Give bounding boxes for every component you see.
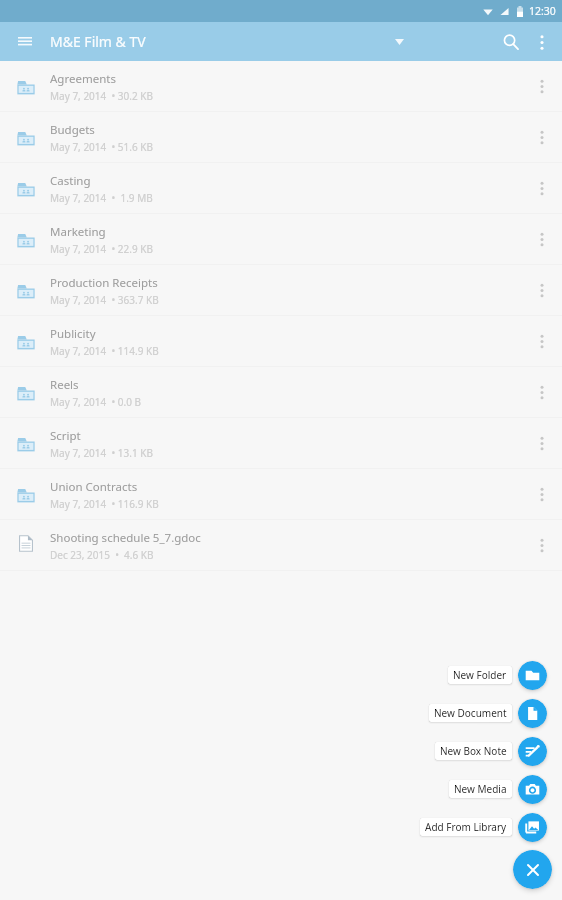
staticText: May 7, 2014 • 22.9 KB bbox=[50, 242, 153, 256]
button[interactable]: Close menu bbox=[513, 850, 552, 889]
staticText: M&E Film & TV bbox=[50, 32, 146, 51]
button[interactable]: New Media bbox=[449, 780, 512, 798]
button[interactable]: Item options bbox=[522, 423, 562, 463]
button[interactable]: New Box Note bbox=[435, 742, 512, 760]
staticText: Script bbox=[50, 428, 81, 444]
button[interactable]: Item options bbox=[522, 372, 562, 412]
button[interactable]: Item options bbox=[522, 525, 562, 565]
button[interactable]: Production Receipts bbox=[0, 265, 562, 315]
staticText: Casting bbox=[50, 173, 91, 189]
button[interactable]: Add From Library bbox=[420, 818, 512, 836]
button[interactable]: More options bbox=[526, 26, 558, 58]
staticText: New Box Note bbox=[440, 744, 507, 758]
staticText: New Media bbox=[454, 782, 507, 796]
staticText: Add From Library bbox=[425, 820, 507, 834]
staticText: May 7, 2014 • 1.9 MB bbox=[50, 191, 153, 205]
staticText: Agreements bbox=[50, 71, 116, 87]
staticText: May 7, 2014 • 114.9 KB bbox=[50, 344, 159, 358]
staticText: May 7, 2014 • 0.0 B bbox=[50, 395, 142, 409]
button[interactable]: Marketing bbox=[0, 214, 562, 264]
staticText: Marketing bbox=[50, 224, 106, 240]
button[interactable]: New Document bbox=[429, 704, 512, 722]
button[interactable]: Publicity bbox=[0, 316, 562, 366]
staticText: Budgets bbox=[50, 122, 95, 138]
button[interactable]: Shooting schedule 5_7.gdoc bbox=[0, 520, 562, 570]
button[interactable]: Add From Library bbox=[518, 813, 547, 842]
staticText: May 7, 2014 • 51.6 KB bbox=[50, 140, 153, 154]
button[interactable]: Reels bbox=[0, 367, 562, 417]
staticText: New Document bbox=[434, 706, 507, 720]
button[interactable]: Search bbox=[493, 24, 529, 60]
staticText: May 7, 2014 • 116.9 KB bbox=[50, 497, 159, 511]
button[interactable]: Item options bbox=[522, 219, 562, 259]
staticText: 12:30 bbox=[529, 4, 556, 18]
staticText: May 7, 2014 • 363.7 KB bbox=[50, 293, 159, 307]
staticText: Publicity bbox=[50, 326, 96, 342]
staticText: Production Receipts bbox=[50, 275, 158, 291]
staticText: Reels bbox=[50, 377, 79, 393]
button[interactable]: New Media bbox=[518, 775, 547, 804]
button[interactable]: Script bbox=[0, 418, 562, 468]
staticText: Shooting schedule 5_7.gdoc bbox=[50, 530, 201, 546]
staticText: May 7, 2014 • 13.1 KB bbox=[50, 446, 153, 460]
staticText: Dec 23, 2015 • 4.6 KB bbox=[50, 548, 154, 562]
staticText: May 7, 2014 • 30.2 KB bbox=[50, 89, 153, 103]
button[interactable]: Item options bbox=[522, 117, 562, 157]
staticText: Union Contracts bbox=[50, 479, 138, 495]
button[interactable]: Item options bbox=[522, 66, 562, 106]
button[interactable]: New Box Note bbox=[518, 737, 547, 766]
button[interactable]: Item options bbox=[522, 270, 562, 310]
button[interactable]: Dropdown bbox=[385, 28, 413, 56]
button[interactable]: Union Contracts bbox=[0, 469, 562, 519]
button[interactable]: Item options bbox=[522, 474, 562, 514]
button[interactable]: New Folder bbox=[448, 666, 512, 684]
button[interactable]: New Document bbox=[518, 699, 547, 728]
button[interactable]: New Folder bbox=[518, 661, 547, 690]
button[interactable]: Item options bbox=[522, 168, 562, 208]
button[interactable]: Casting bbox=[0, 163, 562, 213]
button[interactable]: Menu bbox=[7, 24, 43, 60]
button[interactable]: Budgets bbox=[0, 112, 562, 162]
button[interactable]: Item options bbox=[522, 321, 562, 361]
button[interactable]: Agreements bbox=[0, 61, 562, 111]
staticText: New Folder bbox=[453, 668, 507, 682]
